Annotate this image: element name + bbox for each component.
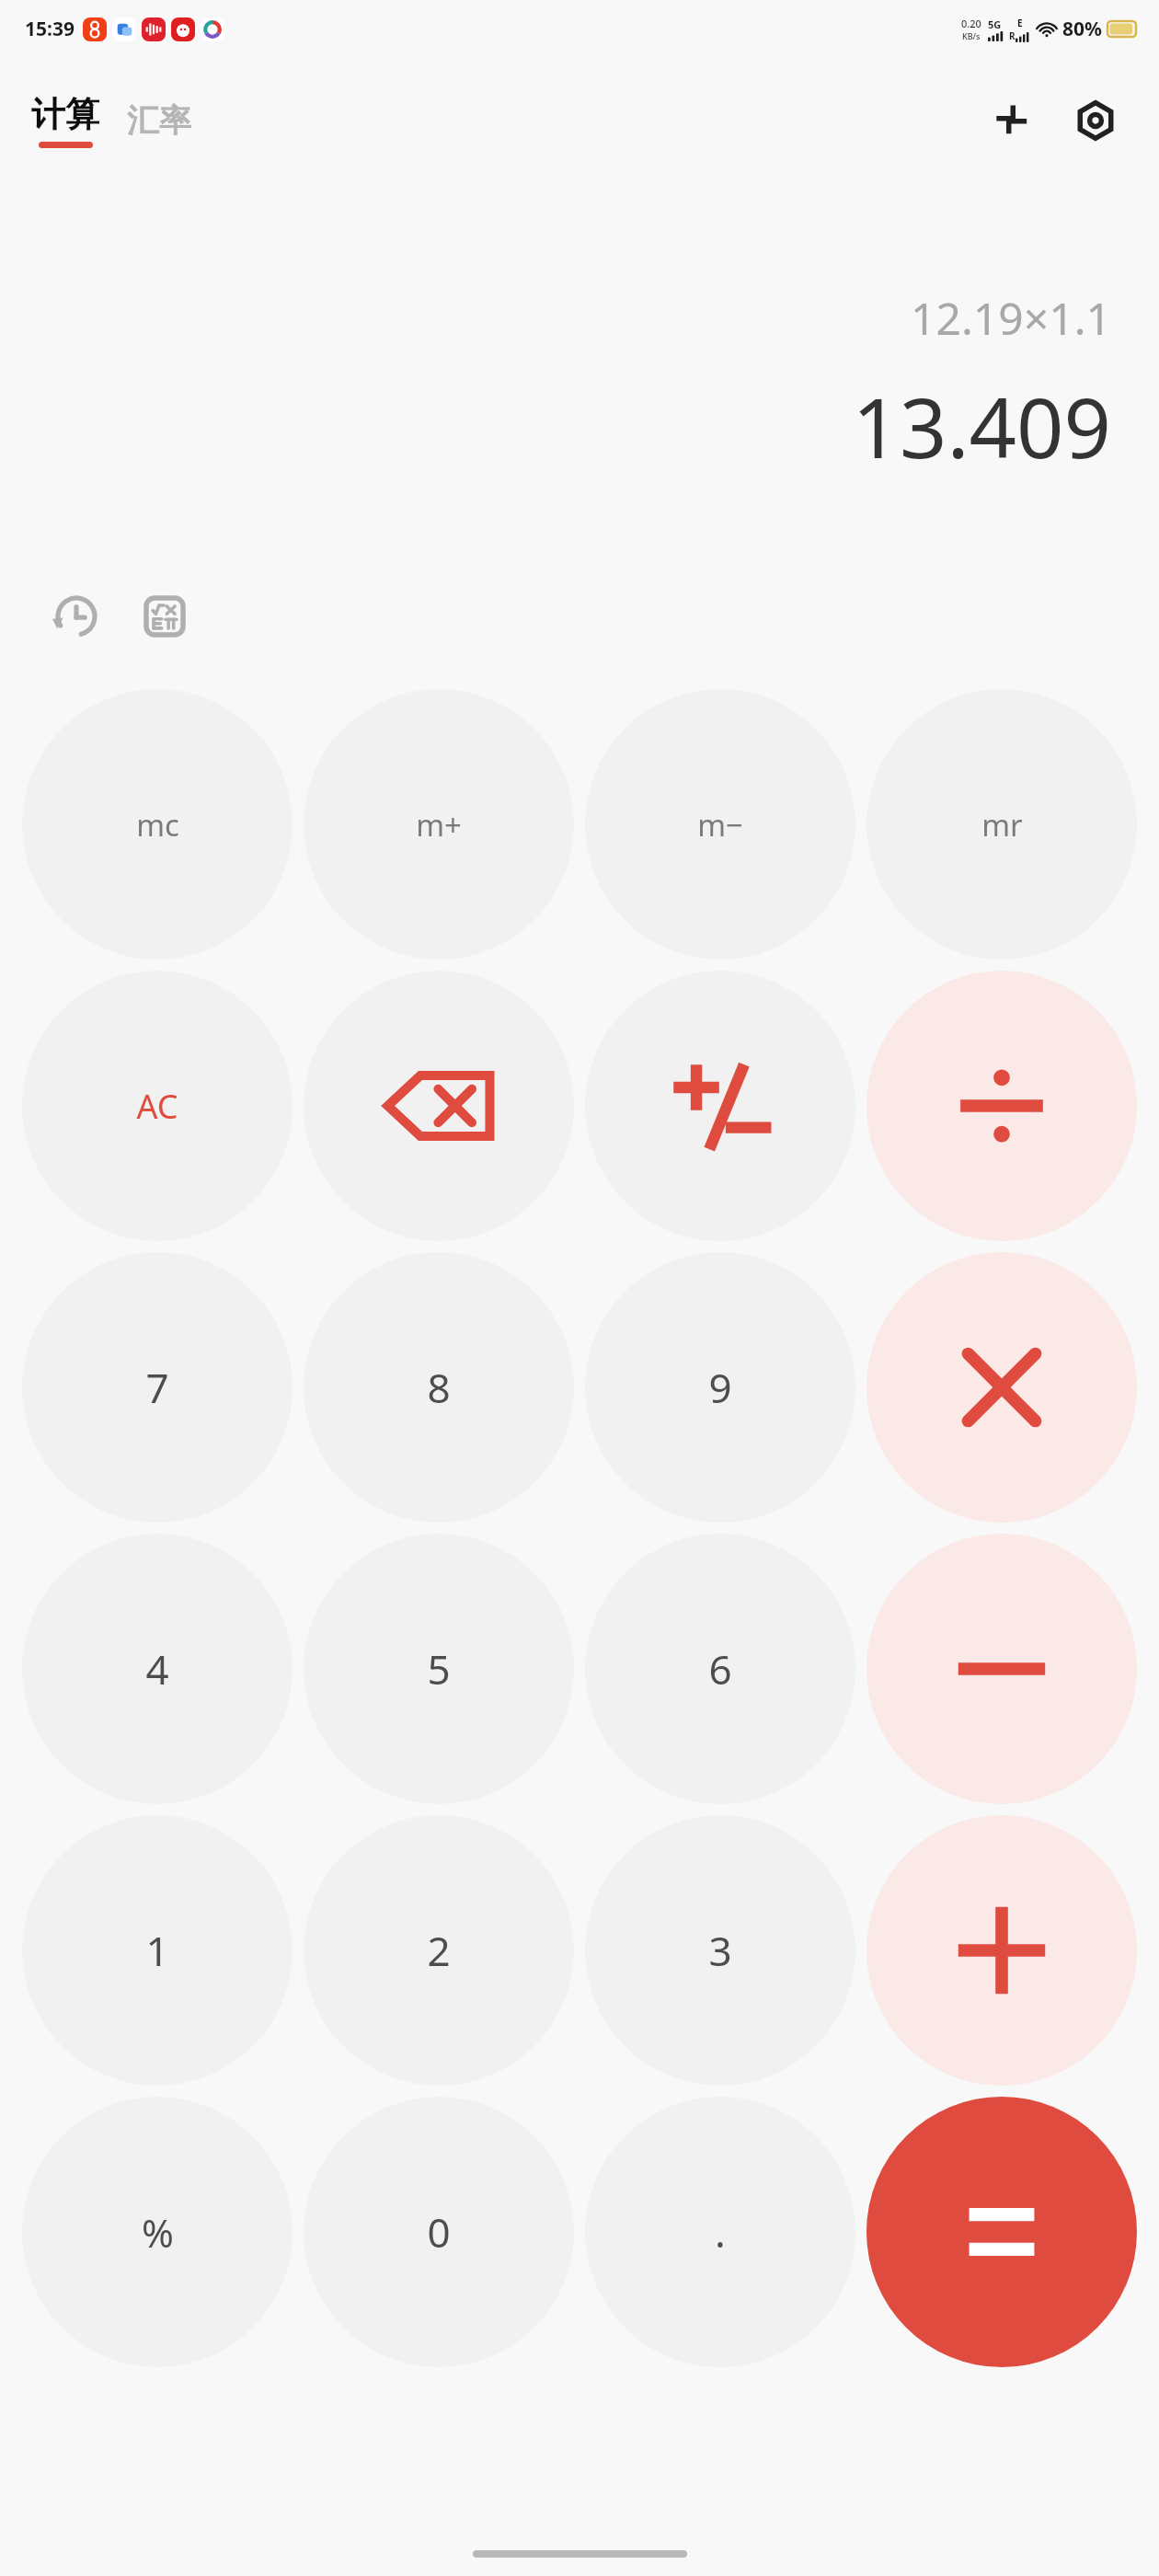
button[interactable]: 1 xyxy=(22,1815,293,2086)
button[interactable]: 6 xyxy=(585,1534,855,1804)
staticText: 6 xyxy=(708,1641,732,1696)
staticText: % xyxy=(142,2206,174,2259)
staticText: m− xyxy=(697,804,743,845)
staticText: . xyxy=(715,2204,726,2260)
button[interactable]: 3 xyxy=(585,1815,855,2086)
staticText: AC xyxy=(136,1084,178,1129)
button[interactable]: Divide xyxy=(866,971,1137,1241)
button[interactable]: % xyxy=(22,2097,293,2367)
staticText: 5 xyxy=(427,1641,451,1696)
staticText: 15:39 xyxy=(25,16,75,42)
staticText: m+ xyxy=(416,804,462,845)
staticText: 9 xyxy=(708,1360,732,1415)
button[interactable]: 4 xyxy=(22,1534,293,1804)
staticText: 12.19×1.1 xyxy=(911,288,1111,348)
staticText: 1 xyxy=(145,1923,169,1978)
button[interactable]: Minus xyxy=(866,1534,1137,1804)
button[interactable]: 汇率 xyxy=(123,95,195,146)
staticText: 80% xyxy=(1062,16,1102,42)
staticText: 3 xyxy=(708,1923,732,1978)
button[interactable]: . xyxy=(585,2097,855,2367)
staticText: 4 xyxy=(145,1641,169,1696)
staticText: 2 xyxy=(427,1923,451,1978)
staticText: KB/s xyxy=(962,30,981,41)
staticText: 汇率 xyxy=(127,100,191,141)
button[interactable]: m+ xyxy=(304,689,574,960)
button[interactable]: Collapse keyboard xyxy=(984,94,1038,147)
button[interactable]: AC xyxy=(22,971,293,1241)
button[interactable]: mc xyxy=(22,689,293,960)
button[interactable]: Multiply xyxy=(866,1252,1137,1523)
button[interactable]: Plus minus xyxy=(585,971,855,1241)
staticText: E xyxy=(1017,17,1023,29)
button[interactable]: 0 xyxy=(304,2097,574,2367)
button[interactable]: Equals xyxy=(866,2097,1137,2367)
button[interactable]: History xyxy=(40,581,112,652)
staticText: 0 xyxy=(427,2204,451,2260)
button[interactable]: mr xyxy=(866,689,1137,960)
button[interactable]: m− xyxy=(585,689,855,960)
button[interactable]: 8 xyxy=(304,1252,574,1523)
button[interactable]: 9 xyxy=(585,1252,855,1523)
button[interactable]: 计算 xyxy=(28,93,103,148)
button[interactable]: 7 xyxy=(22,1252,293,1523)
staticText: 7 xyxy=(145,1360,169,1415)
staticText: 计算 xyxy=(31,93,99,136)
button[interactable]: Backspace xyxy=(304,971,574,1241)
button[interactable]: Scientific mode xyxy=(129,581,201,652)
staticText: mc xyxy=(136,804,179,845)
button[interactable]: 2 xyxy=(304,1815,574,2086)
staticText: 5G xyxy=(988,17,1002,31)
staticText: 13.409 xyxy=(852,370,1111,483)
staticText: 0.20 xyxy=(961,17,981,30)
button[interactable]: Settings xyxy=(1069,94,1122,147)
button[interactable]: Plus xyxy=(866,1815,1137,2086)
staticText: R xyxy=(1009,29,1016,42)
staticText: 8 xyxy=(427,1360,451,1415)
staticText: mr xyxy=(981,804,1023,845)
button[interactable]: 5 xyxy=(304,1534,574,1804)
